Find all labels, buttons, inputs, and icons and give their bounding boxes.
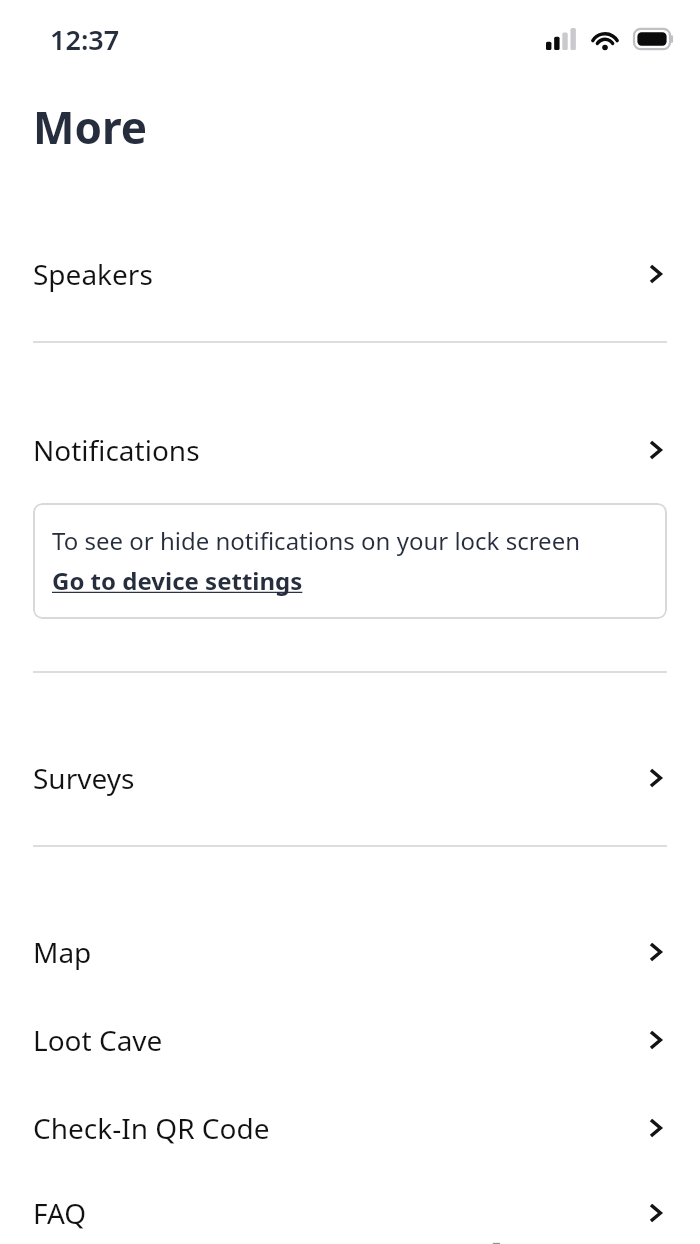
staticText: 12:37 [50, 21, 120, 58]
staticText: FAQ [33, 1194, 87, 1232]
staticText: Check-In QR Code [33, 1109, 270, 1147]
staticText: Surveys [33, 759, 135, 797]
button[interactable]: Map [0, 917, 700, 987]
button[interactable]: Notifications [0, 415, 700, 485]
staticText: More [33, 97, 148, 157]
button[interactable]: Check-In QR Code [0, 1093, 700, 1163]
button[interactable]: Go to device settings [52, 564, 303, 597]
staticText: Go to device settings [52, 564, 303, 597]
staticText: To see or hide notifications on your loc… [52, 524, 581, 557]
staticText: Speakers [33, 255, 153, 293]
button[interactable]: Speakers [0, 239, 700, 309]
button[interactable]: Surveys [0, 743, 700, 813]
button[interactable]: Loot Cave [0, 1005, 700, 1075]
staticText: Notifications [33, 431, 200, 469]
staticText: Loot Cave [33, 1021, 163, 1059]
button[interactable]: FAQ [0, 1181, 700, 1244]
staticText: Map [33, 933, 92, 971]
